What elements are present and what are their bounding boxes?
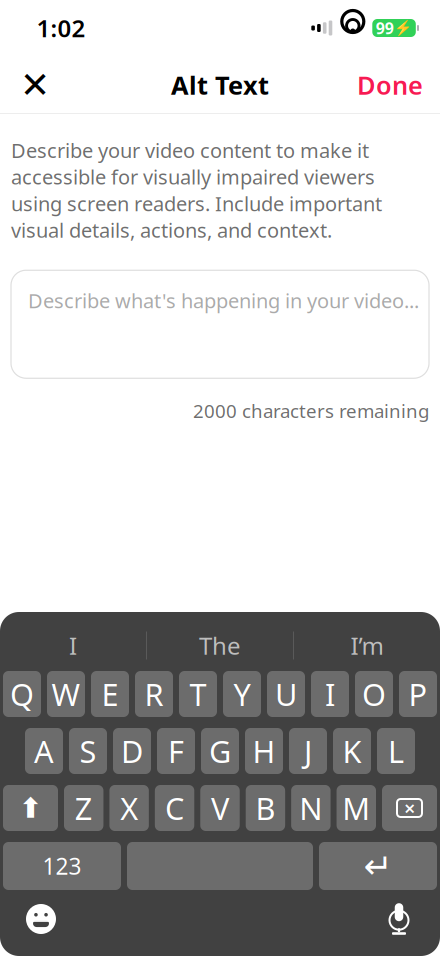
button[interactable]: Done (346, 57, 434, 113)
button[interactable]: W (47, 671, 85, 717)
button[interactable]: I’m (294, 620, 440, 671)
button[interactable]: X (109, 785, 149, 831)
button[interactable]: Z (64, 785, 103, 831)
staticText: 1:02 (36, 12, 85, 44)
staticText: U (275, 674, 297, 714)
button[interactable]: Return (319, 842, 437, 890)
button[interactable]: O (355, 671, 393, 717)
staticText: B (255, 788, 275, 828)
staticText: W (51, 674, 80, 714)
button[interactable]: R (135, 671, 173, 717)
button[interactable]: U (267, 671, 305, 717)
staticText: K (342, 731, 361, 771)
staticText: H (252, 731, 275, 771)
button[interactable]: I (311, 671, 349, 717)
staticText: M (342, 788, 370, 828)
button[interactable]: The (147, 620, 293, 671)
button[interactable]: Close (6, 57, 64, 113)
staticText: Alt Text (171, 68, 269, 102)
staticText: × (404, 795, 415, 821)
button[interactable]: V (200, 785, 240, 831)
button[interactable]: Delete (382, 785, 437, 831)
staticText: T (189, 674, 206, 714)
staticText: D (121, 731, 143, 771)
staticText: The (199, 630, 241, 661)
staticText: G (209, 731, 231, 771)
button[interactable]: Q (3, 671, 41, 717)
button[interactable]: E (91, 671, 129, 717)
button[interactable]: L (377, 728, 415, 774)
button[interactable]: K (333, 728, 371, 774)
staticText: V (211, 788, 229, 828)
staticText: A (34, 731, 54, 771)
button[interactable]: C (155, 785, 194, 831)
staticText: Q (10, 674, 34, 714)
staticText: S (79, 731, 96, 771)
button[interactable]: T (179, 671, 217, 717)
button[interactable]: J (289, 728, 327, 774)
staticText: 99 (376, 17, 394, 39)
staticText: Y (233, 674, 250, 714)
staticText: ↵ (363, 846, 392, 886)
button[interactable]: H (245, 728, 283, 774)
button[interactable]: 123 (3, 842, 121, 890)
staticText: 2000 characters remaining (193, 398, 429, 423)
button[interactable]: G (201, 728, 239, 774)
button[interactable]: Shift (3, 785, 58, 831)
button[interactable]: D (113, 728, 151, 774)
staticText: J (304, 731, 312, 771)
button[interactable]: Emoji keyboard (12, 893, 70, 945)
staticText: P (408, 674, 427, 714)
button[interactable]: S (69, 728, 107, 774)
staticText: I (69, 630, 77, 661)
staticText: 123 (42, 851, 81, 881)
staticText: X (120, 788, 138, 828)
staticText: Describe your video content to make it a… (11, 137, 382, 243)
button[interactable]: I (0, 620, 146, 671)
staticText: I (325, 674, 335, 714)
button[interactable]: Describe what's happening in your video.… (11, 270, 429, 378)
button[interactable]: Dictate (370, 893, 428, 945)
button[interactable]: P (399, 671, 437, 717)
staticText: L (388, 731, 404, 771)
staticText: O (362, 674, 386, 714)
button[interactable]: Y (223, 671, 261, 717)
button[interactable]: M (337, 785, 376, 831)
button[interactable]: F (157, 728, 195, 774)
staticText: Done (357, 68, 423, 102)
staticText: I’m (350, 630, 383, 661)
staticText: C (165, 788, 184, 828)
staticText: N (299, 788, 322, 828)
staticText: ✕ (20, 65, 50, 105)
staticText: E (101, 674, 118, 714)
button[interactable]: B (246, 785, 285, 831)
staticText: R (144, 674, 163, 714)
staticText: ⬆ (19, 792, 42, 824)
button[interactable]: N (291, 785, 330, 831)
staticText: ⚡ (394, 20, 412, 36)
staticText: Z (75, 788, 93, 828)
staticText: Describe what's happening in your video.… (28, 287, 419, 314)
staticText: F (168, 731, 184, 771)
button[interactable]: A (25, 728, 63, 774)
